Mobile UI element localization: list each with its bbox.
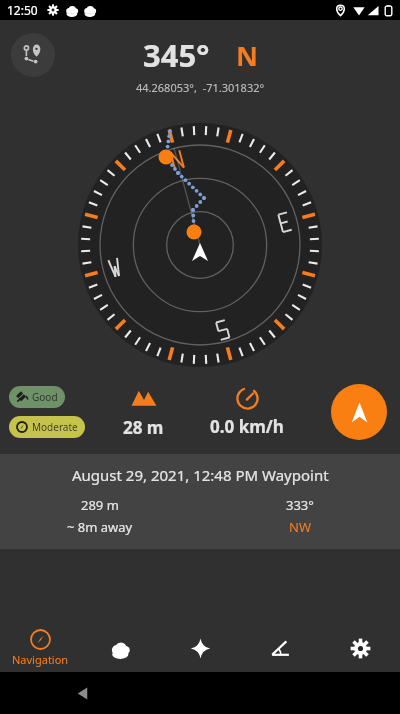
button[interactable]: Clinometer [240,624,320,672]
button[interactable]: Start navigation [331,384,387,440]
staticText: Navigation [12,652,69,667]
button[interactable]: Good [9,386,65,408]
button[interactable]: Astronomy [160,624,240,672]
button[interactable]: Compass [78,123,322,367]
staticText: 44.268053°, -71.301832° [136,80,265,95]
button[interactable]: Navigation [0,624,80,672]
button[interactable]: Moderate [9,416,85,438]
staticText: 289 m [81,496,119,514]
staticText: 345° [143,34,210,76]
staticText: 12:50 [7,2,38,18]
button[interactable]: Settings [320,624,400,672]
staticText: 0.0 km/h [210,415,284,438]
staticText: 333° [286,496,314,514]
staticText: N [236,37,258,74]
staticText: NW [289,518,311,536]
staticText: 28 m [123,416,164,439]
button[interactable]: Waypoints [11,33,55,77]
staticText: Good [32,390,58,404]
staticText: August 29, 2021, 12:48 PM Waypoint [72,465,329,485]
button[interactable]: August 29, 2021, 12:48 PM Waypoint [0,454,400,549]
button[interactable]: Weather [80,624,160,672]
staticText: Moderate [32,420,78,434]
staticText: ~ 8m away [67,518,133,536]
